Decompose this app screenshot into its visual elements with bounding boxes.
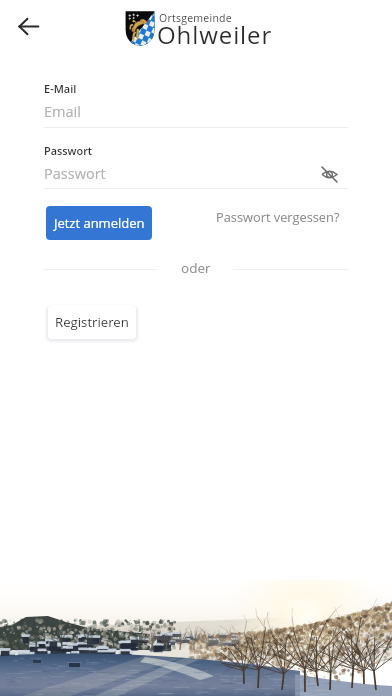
staticText: E-Mail (44, 81, 77, 96)
staticText: oder (181, 259, 211, 277)
button[interactable]: Show password (316, 161, 342, 187)
staticText: Registrieren (55, 313, 129, 331)
button[interactable]: Passwort vergessen? (211, 201, 345, 232)
button[interactable]: Jetzt anmelden (46, 206, 152, 240)
staticText: Ortsgemeinde (159, 11, 232, 25)
staticText: Passwort vergessen? (216, 208, 340, 225)
staticText: Passwort (44, 164, 106, 184)
button[interactable]: Registrieren (48, 305, 136, 339)
staticText: Ohlweiler (157, 18, 273, 51)
staticText: Email (44, 102, 81, 122)
staticText: Passwort (44, 143, 93, 158)
button[interactable]: Back (10, 8, 46, 44)
staticText: Jetzt anmelden (54, 214, 145, 232)
